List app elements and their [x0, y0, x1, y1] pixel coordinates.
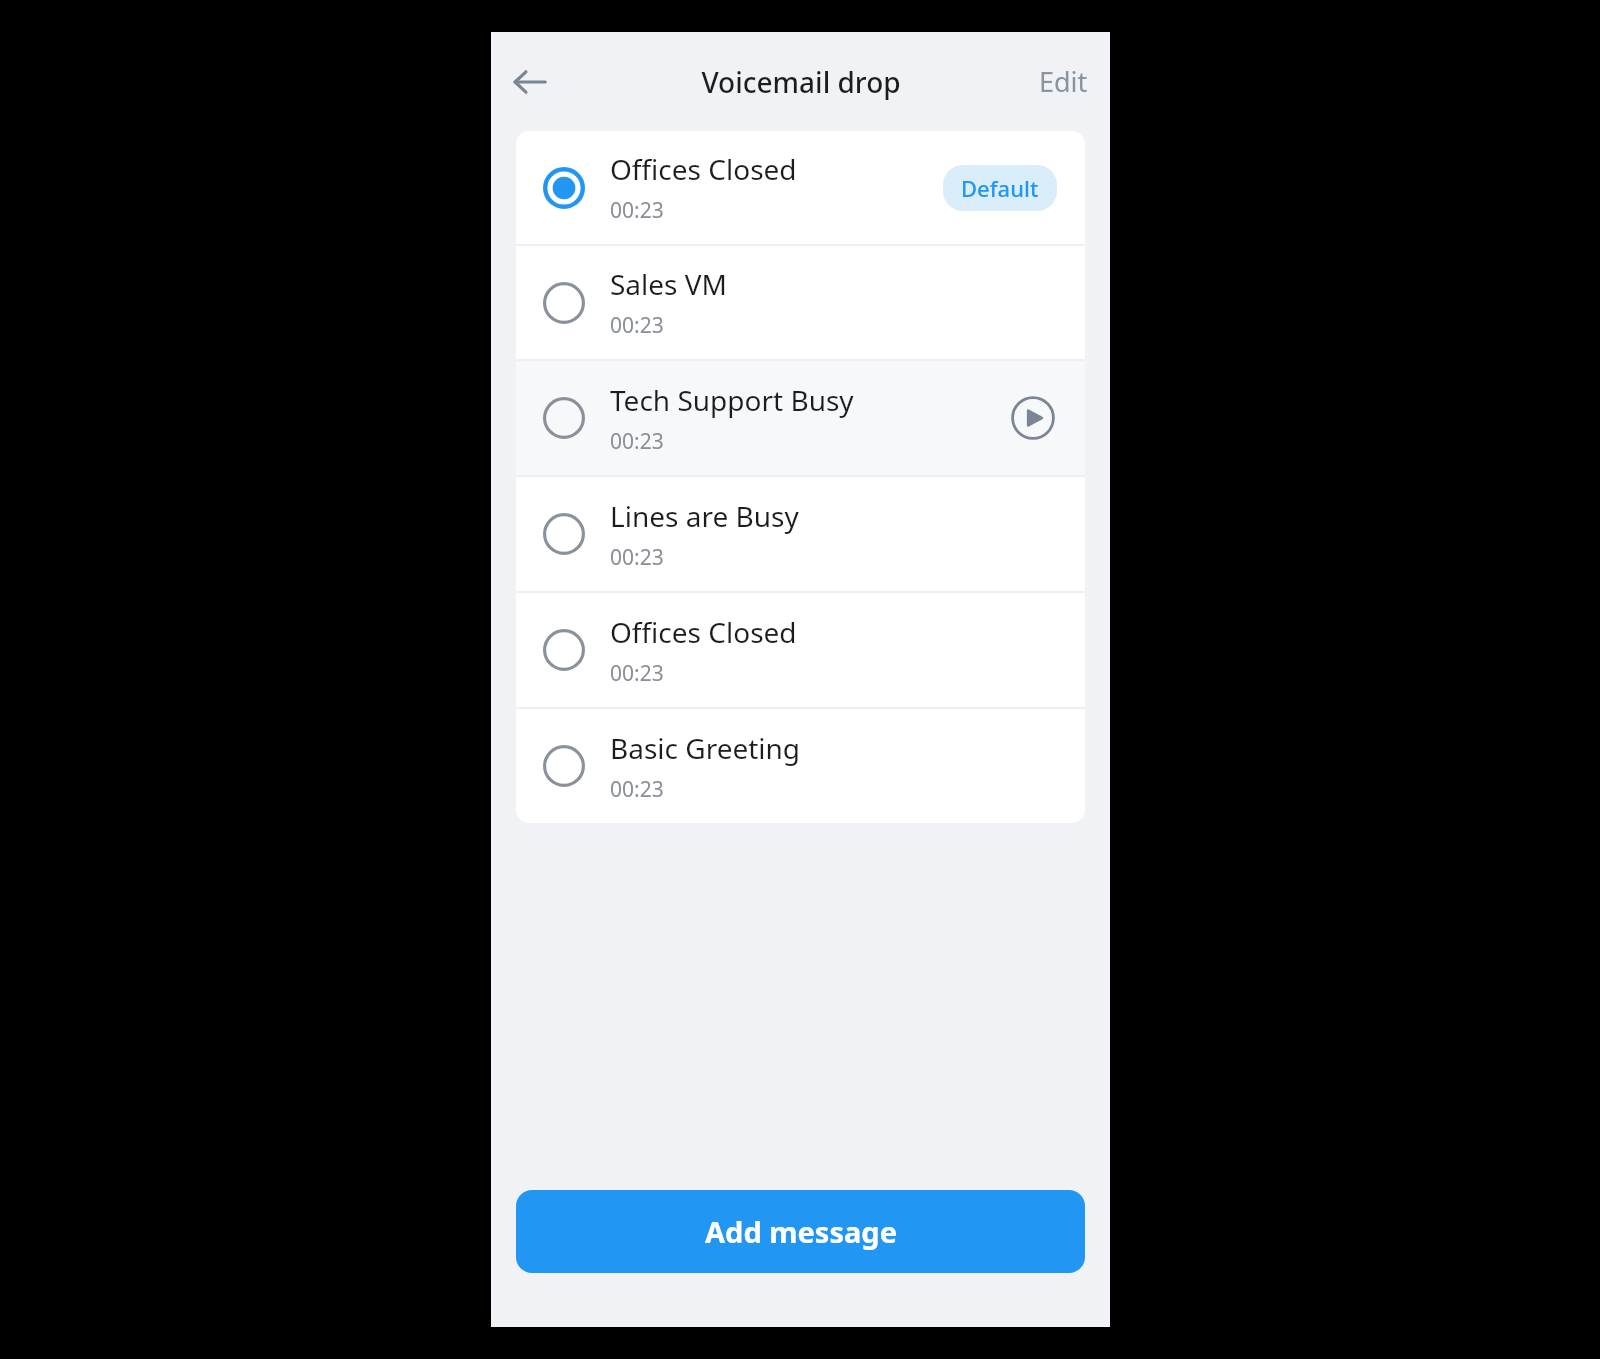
staticText: Basic Greeting	[610, 729, 801, 767]
button[interactable]: Default	[943, 165, 1057, 211]
staticText: 00:23	[610, 659, 664, 688]
button[interactable]: Edit	[1017, 53, 1110, 110]
button[interactable]: Offices Closed	[516, 593, 1085, 707]
staticText: 00:23	[610, 543, 664, 572]
staticText: Edit	[1039, 63, 1088, 100]
staticText: Sales VM	[610, 265, 727, 303]
staticText: Offices Closed	[610, 150, 797, 188]
staticText: Default	[961, 173, 1039, 203]
button[interactable]: Sales VM	[516, 246, 1085, 359]
button[interactable]: Back	[501, 53, 559, 111]
staticText: Add message	[705, 1212, 897, 1251]
staticText: Voicemail drop	[701, 63, 901, 101]
button[interactable]: Play	[1007, 392, 1059, 444]
staticText: 00:23	[610, 311, 664, 340]
staticText: Lines are Busy	[610, 497, 799, 535]
button[interactable]: Tech Support Busy	[516, 361, 1085, 475]
button[interactable]: Basic Greeting	[516, 709, 1085, 823]
staticText: 00:23	[610, 427, 664, 456]
staticText: Offices Closed	[610, 613, 797, 651]
button[interactable]: Offices Closed	[516, 131, 1085, 244]
button[interactable]: Lines are Busy	[516, 477, 1085, 591]
button[interactable]: Add message	[516, 1190, 1085, 1273]
staticText: Tech Support Busy	[610, 381, 854, 419]
staticText: 00:23	[610, 196, 664, 225]
staticText: 00:23	[610, 775, 664, 804]
